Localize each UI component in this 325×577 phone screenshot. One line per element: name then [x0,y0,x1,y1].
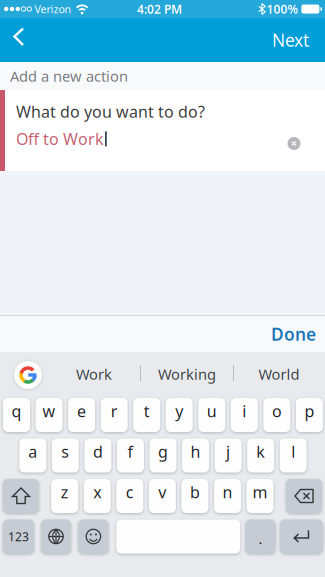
button[interactable]: i [231,398,258,432]
staticText: n [222,481,232,503]
staticText: World [258,364,299,384]
button[interactable]: Work [54,359,134,389]
staticText: p [304,400,314,422]
button[interactable]: p [296,398,323,432]
button[interactable]: . [245,519,275,553]
button[interactable]: s [52,438,79,472]
staticText: y [175,400,183,422]
button[interactable] [41,519,71,553]
staticText: q [11,400,21,422]
button[interactable]: w [35,398,62,432]
staticText: 123 [8,528,29,544]
button[interactable]: t [133,398,160,432]
button[interactable]: y [166,398,193,432]
staticText: Done [271,322,316,345]
staticText: x [93,481,101,503]
staticText: Work [76,364,112,384]
staticText: Off to Work [16,128,104,149]
staticText: t [144,400,150,422]
button[interactable]: b [181,479,208,513]
button[interactable] [286,479,322,513]
staticText: j [226,441,230,462]
button[interactable]: n [214,479,241,513]
staticText: . [258,529,262,548]
staticText: a [28,441,37,462]
button[interactable] [0,21,30,59]
button[interactable]: e [68,398,95,432]
staticText: h [191,441,201,462]
button[interactable]: d [84,438,111,472]
staticText: z [61,481,69,503]
button[interactable] [3,479,39,513]
staticText: m [252,481,267,503]
staticText: w [42,400,55,422]
button[interactable]: q [3,398,30,432]
staticText: 4:02 PM [137,1,182,17]
staticText: d [93,441,103,462]
button[interactable]: f [117,438,144,472]
button[interactable]: r [101,398,128,432]
button[interactable]: m [246,479,273,513]
staticText: Working [158,364,216,384]
button[interactable]: a [19,438,46,472]
staticText: Add a new action [10,66,128,86]
button[interactable]: g [149,438,176,472]
button[interactable]: j [215,438,242,472]
button[interactable]: Working [147,359,227,389]
staticText: v [158,481,166,503]
staticText: Next [272,28,309,51]
staticText: g [158,441,168,462]
staticText: e [77,400,86,422]
button[interactable]: l [280,438,307,472]
staticText: s [61,441,69,462]
button[interactable] [78,519,108,553]
staticText: Verizon [35,2,72,16]
staticText: i [242,400,246,422]
staticText: u [207,400,217,422]
button[interactable]: Next [272,28,325,51]
button[interactable] [14,361,42,389]
button[interactable]: k [247,438,274,472]
button[interactable]: o [263,398,290,432]
button[interactable]: v [149,479,176,513]
staticText: f [127,441,133,462]
button[interactable]: What do you want to do? [0,90,325,171]
button[interactable] [287,137,300,150]
staticText: r [111,400,118,422]
staticText: b [190,481,200,503]
button[interactable]: Done [271,322,325,345]
button[interactable] [280,519,323,553]
button[interactable]: h [182,438,209,472]
button[interactable]: x [84,479,111,513]
button[interactable]: c [116,479,143,513]
button[interactable]: u [198,398,225,432]
staticText: l [291,441,295,462]
staticText: o [272,400,282,422]
staticText: k [256,441,265,462]
button[interactable] [116,519,240,553]
staticText: 100% [266,1,298,17]
button[interactable]: z [51,479,78,513]
button[interactable]: 123 [3,519,34,553]
button[interactable]: World [239,359,319,389]
staticText: c [126,481,134,503]
staticText: What do you want to do? [16,101,205,122]
